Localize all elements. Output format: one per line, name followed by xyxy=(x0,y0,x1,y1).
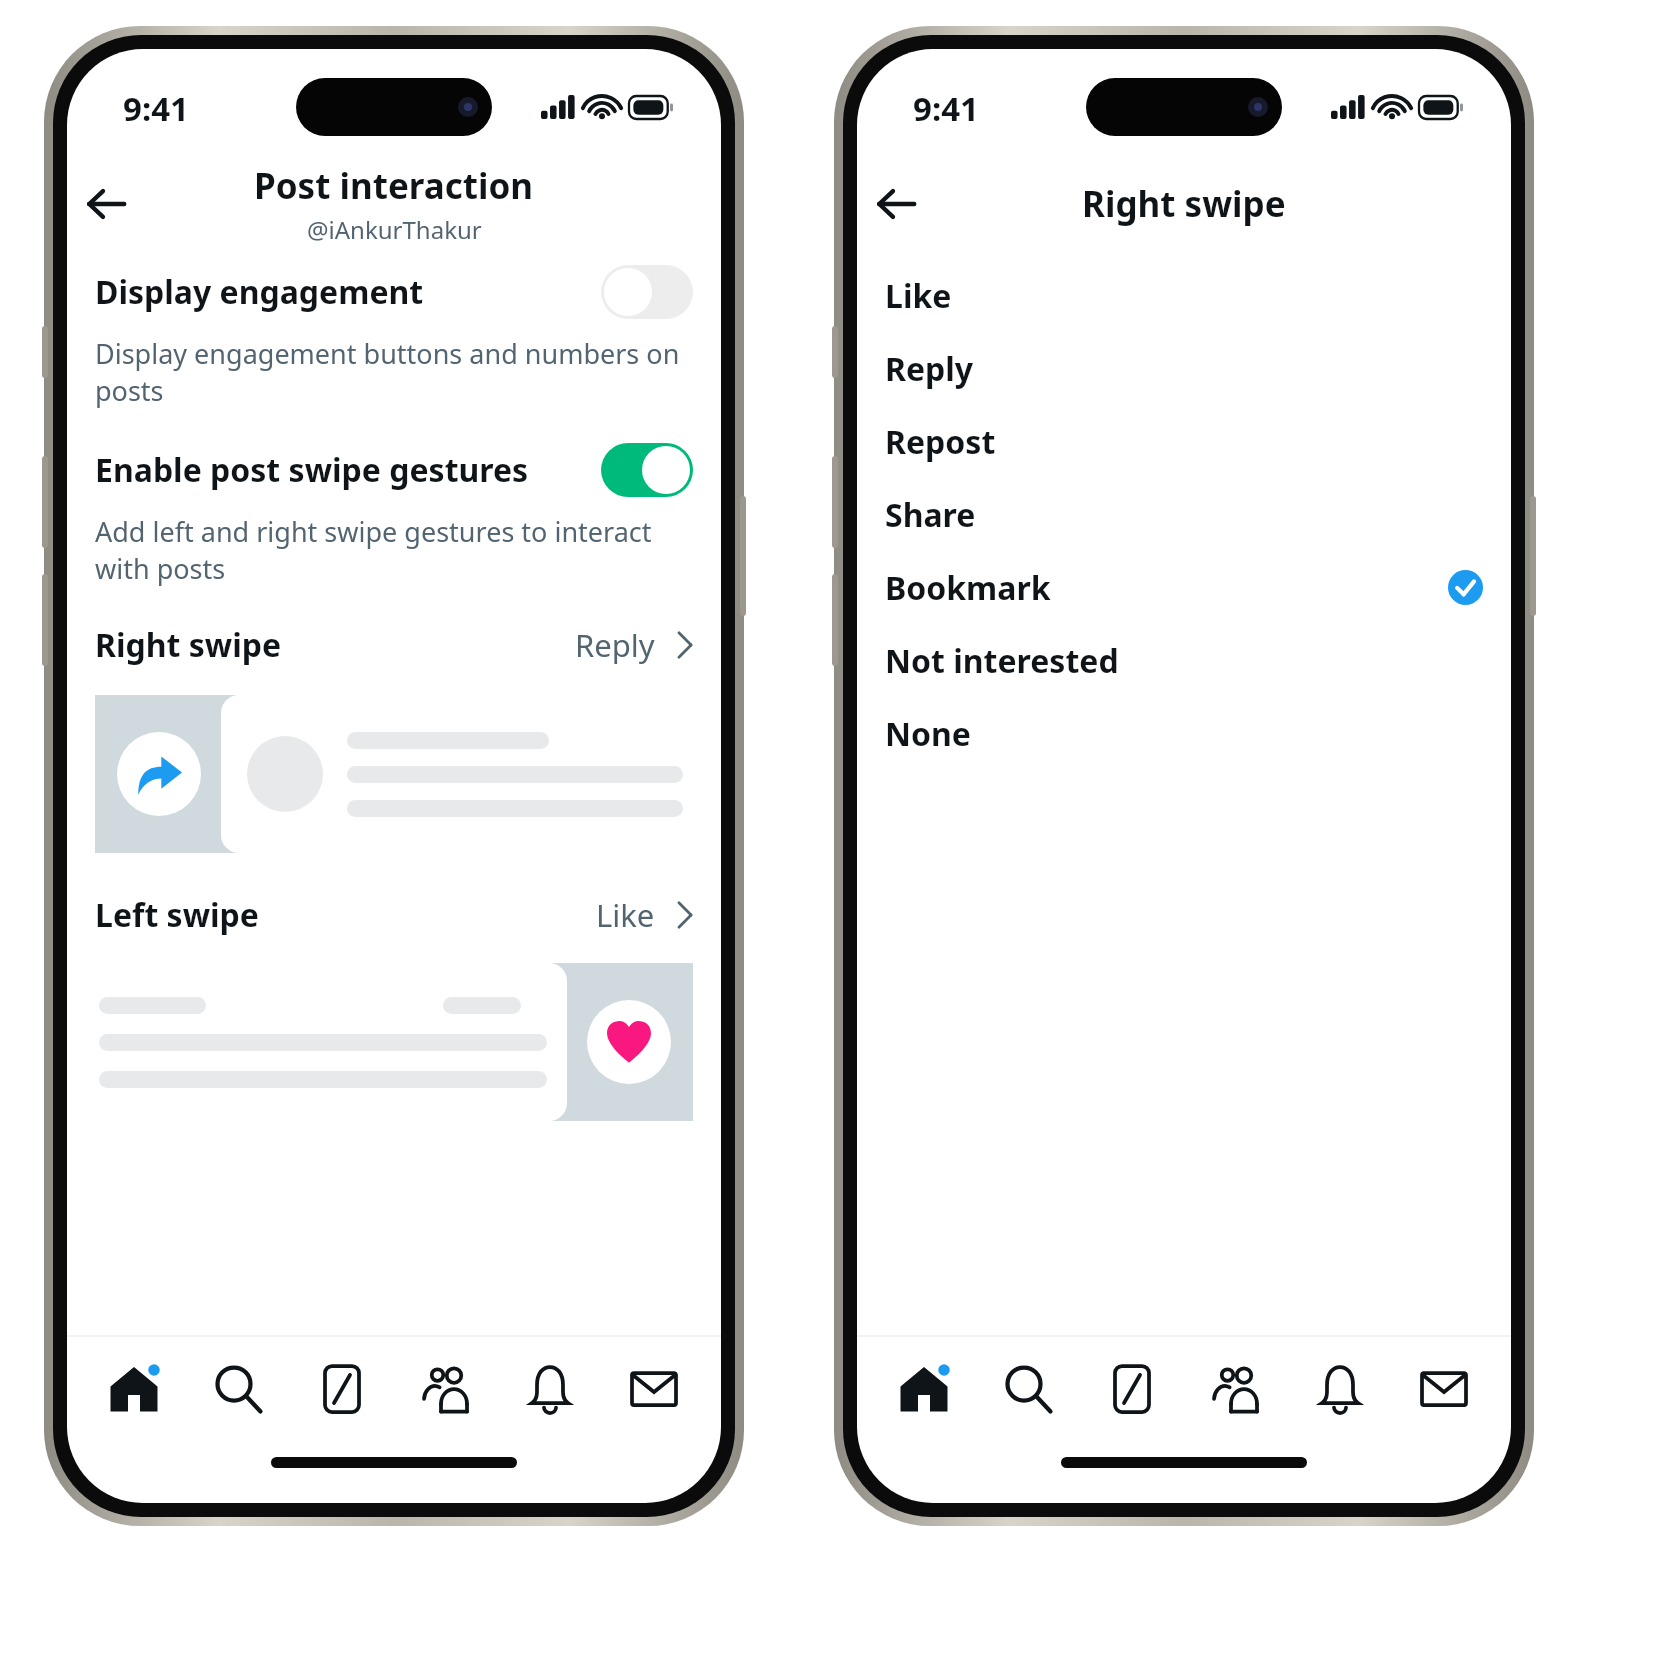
staticText: Like xyxy=(885,274,1483,318)
staticText: Reply xyxy=(885,347,1483,391)
staticText: Right swipe xyxy=(1082,180,1286,228)
staticText: Post interaction xyxy=(254,162,534,210)
staticText: Left swipe xyxy=(95,893,596,937)
button[interactable]: None xyxy=(857,697,1511,770)
staticText: Like xyxy=(596,894,655,936)
button[interactable]: Notifications xyxy=(1295,1346,1385,1432)
button[interactable]: Enable post swipe gestures xyxy=(67,443,721,587)
button[interactable]: Display engagement xyxy=(67,265,721,409)
staticText: Share xyxy=(885,493,1483,537)
button[interactable]: Messages xyxy=(609,1346,699,1432)
button[interactable]: Search xyxy=(983,1346,1073,1432)
staticText: 9:41 xyxy=(123,86,189,131)
button[interactable]: Notifications xyxy=(505,1346,595,1432)
button[interactable]: Like xyxy=(857,259,1511,332)
button[interactable]: Home xyxy=(879,1346,969,1432)
button[interactable]: On xyxy=(601,443,693,497)
button[interactable]: Not interested xyxy=(857,624,1511,697)
staticText: Enable post swipe gestures xyxy=(95,448,601,492)
staticText: Display engagement xyxy=(95,270,601,314)
button[interactable]: Share xyxy=(857,478,1511,551)
staticText: 9:41 xyxy=(913,86,979,131)
button[interactable]: Repost xyxy=(857,405,1511,478)
button[interactable]: Right swipe xyxy=(67,617,721,673)
staticText: Add left and right swipe gestures to int… xyxy=(95,513,693,587)
button[interactable]: Off xyxy=(601,265,693,319)
button[interactable]: Bookmark xyxy=(857,551,1511,624)
staticText: Reply xyxy=(575,624,655,666)
button[interactable]: Grok xyxy=(1087,1346,1177,1432)
staticText: Not interested xyxy=(885,639,1483,683)
staticText: Bookmark xyxy=(885,566,1448,610)
staticText: @iAnkurThakur xyxy=(307,213,482,246)
button[interactable]: Grok xyxy=(297,1346,387,1432)
staticText: Right swipe xyxy=(95,623,575,667)
button[interactable]: Communities xyxy=(401,1346,491,1432)
button[interactable]: Search xyxy=(193,1346,283,1432)
button[interactable]: Back xyxy=(73,171,139,237)
button[interactable]: Messages xyxy=(1399,1346,1489,1432)
button[interactable]: Reply xyxy=(857,332,1511,405)
button[interactable]: Communities xyxy=(1191,1346,1281,1432)
button[interactable]: Home xyxy=(89,1346,179,1432)
staticText: Display engagement buttons and numbers o… xyxy=(95,335,693,409)
staticText: None xyxy=(885,712,1483,756)
staticText: Repost xyxy=(885,420,1483,464)
button[interactable]: Left swipe xyxy=(67,887,721,943)
button[interactable]: Back xyxy=(863,171,929,237)
